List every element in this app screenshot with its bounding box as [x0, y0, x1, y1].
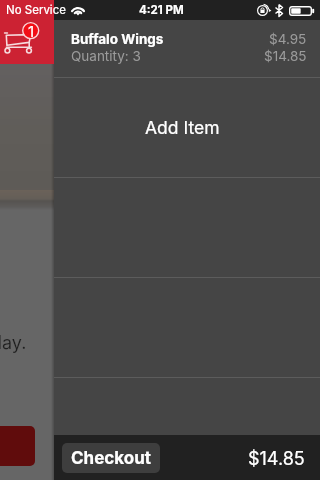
- staticText: day.: [0, 332, 27, 354]
- staticText: $14.85: [248, 448, 305, 470]
- button[interactable]: Shopping cart: [0, 0, 54, 64]
- staticText: Quantity: 3: [71, 48, 141, 64]
- button[interactable]: Order: [0, 426, 35, 466]
- staticText: 4:21 PM: [139, 3, 184, 17]
- staticText: $4.95: [269, 31, 307, 47]
- staticText: 1: [28, 22, 35, 40]
- staticText: Add Item: [145, 117, 220, 138]
- staticText: No Service: [6, 3, 66, 17]
- button[interactable]: Add Item: [54, 78, 320, 177]
- staticText: $14.85: [264, 48, 307, 64]
- staticText: Buffalo Wings: [71, 31, 164, 47]
- button[interactable]: Checkout: [62, 443, 160, 473]
- button[interactable]: Buffalo Wings: [54, 20, 320, 77]
- staticText: Checkout: [71, 448, 152, 469]
